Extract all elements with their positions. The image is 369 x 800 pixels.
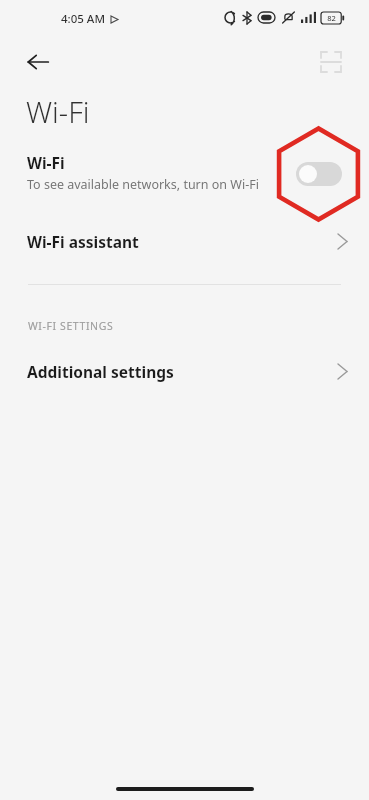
staticText: WI-FI SETTINGS [28,319,114,333]
button[interactable]: Back [18,42,58,82]
staticText: Wi-Fi [26,92,90,131]
staticText: 82 [327,13,336,23]
button[interactable]: Wi-Fi toggle, off [296,162,342,186]
button[interactable]: Wi-Fi assistant [0,222,369,260]
staticText: 4:05 AM [61,11,105,27]
staticText: Additional settings [27,361,174,382]
staticText: Wi-Fi [27,152,65,173]
button[interactable]: Wi-Fi [0,146,369,204]
button[interactable]: Scan QR code [310,41,352,83]
button[interactable]: Additional settings [0,352,369,390]
staticText: To see available networks, turn on Wi-Fi [27,176,259,193]
staticText: Wi-Fi assistant [27,231,139,252]
